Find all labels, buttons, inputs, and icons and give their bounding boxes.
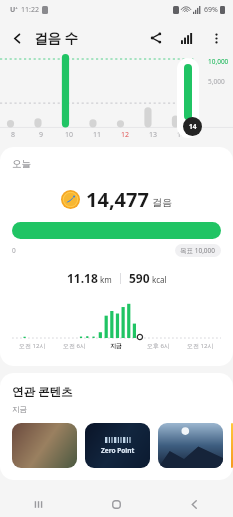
button[interactable]: More options [201, 23, 231, 53]
button[interactable]: Statistics [171, 23, 201, 53]
staticText: 10,000 [208, 57, 229, 66]
staticText: 걸음 수 [34, 29, 79, 47]
button[interactable]: 연관 콘텐츠 [0, 373, 233, 480]
staticText: 14,477 [86, 186, 149, 213]
button[interactable]: Back [0, 21, 34, 55]
staticText: 오전 6시 [63, 342, 86, 350]
staticText: 5,000 [208, 77, 225, 86]
staticText: 지금 [110, 342, 122, 350]
staticText: 12 [121, 130, 130, 140]
button[interactable]: Home [77, 491, 155, 517]
staticText: 11 [93, 130, 102, 140]
staticText: kcal [152, 274, 167, 285]
button[interactable]: Content thumbnail [231, 423, 233, 468]
staticText: 11.18 [67, 270, 98, 286]
staticText: 오늘 [12, 158, 31, 170]
staticText: 0 [12, 246, 16, 255]
staticText: U⁺ [10, 5, 18, 15]
staticText: 오후 6시 [147, 342, 170, 350]
button[interactable]: Back [155, 491, 233, 517]
button[interactable] [177, 58, 199, 138]
staticText: 11:22 [21, 5, 39, 15]
staticText: 오전 12시 [19, 342, 46, 350]
staticText: 8 [11, 130, 16, 140]
staticText: 10 [65, 130, 74, 140]
staticText: 14 [189, 122, 197, 131]
button[interactable]: Content thumbnail [12, 423, 77, 468]
staticText: 걸음 [152, 196, 172, 209]
button[interactable]: Zero Point [85, 423, 150, 468]
button[interactable]: Today [183, 117, 202, 136]
staticText: km [100, 274, 112, 285]
button[interactable]: Content thumbnail [158, 423, 223, 468]
staticText: 14 [177, 130, 186, 140]
staticText: 9 [39, 130, 44, 140]
staticText: 지금 [12, 405, 27, 414]
button[interactable]: 오늘 [0, 147, 233, 366]
staticText: Zero Point [101, 446, 135, 455]
staticText: 590 [129, 270, 150, 286]
staticText: 13 [149, 130, 158, 140]
button[interactable]: Share [141, 23, 171, 53]
staticText: 연관 콘텐츠 [12, 384, 73, 400]
button[interactable]: Recent apps [0, 491, 77, 517]
staticText: 오전 12시 [187, 342, 214, 350]
staticText: 69% [204, 5, 218, 15]
staticText: 목표 10,000 [180, 246, 216, 255]
